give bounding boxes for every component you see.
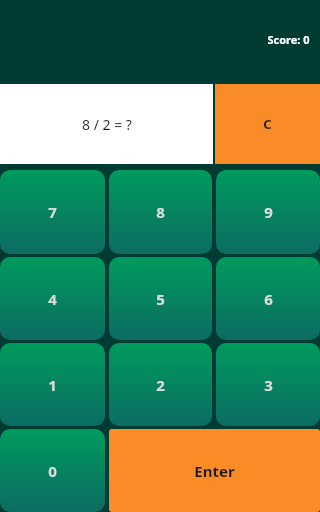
button[interactable]: 5: [109, 257, 212, 340]
button[interactable]: 9: [216, 170, 320, 254]
button[interactable]: 4: [0, 257, 105, 340]
staticText: 9: [264, 202, 273, 222]
staticText: 5: [156, 289, 165, 309]
button[interactable]: 2: [109, 343, 212, 426]
staticText: 8: [156, 202, 165, 222]
button[interactable]: 8 / 2 = ?: [0, 84, 213, 164]
staticText: 4: [48, 289, 57, 309]
button[interactable]: 8: [109, 170, 212, 254]
button[interactable]: 1: [0, 343, 105, 426]
staticText: 1: [48, 375, 57, 395]
staticText: 2: [156, 375, 165, 395]
button[interactable]: Score: 0: [265, 30, 312, 49]
staticText: 3: [264, 375, 273, 395]
staticText: C: [263, 115, 272, 133]
button[interactable]: 6: [216, 257, 320, 340]
staticText: Enter: [194, 461, 235, 481]
staticText: 8 / 2 = ?: [82, 115, 132, 134]
button[interactable]: 0: [0, 429, 105, 512]
staticText: 6: [264, 289, 273, 309]
button[interactable]: Clear: [215, 84, 320, 164]
staticText: 7: [48, 202, 57, 222]
staticText: Score: 0: [267, 32, 310, 47]
staticText: 0: [48, 461, 57, 481]
button[interactable]: Enter: [109, 429, 320, 512]
button[interactable]: 7: [0, 170, 105, 254]
button[interactable]: 3: [216, 343, 320, 426]
